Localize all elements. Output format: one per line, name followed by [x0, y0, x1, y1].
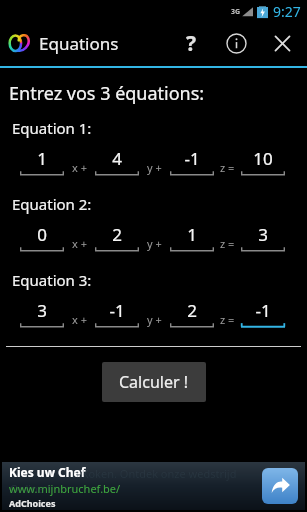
button[interactable]: Open ad: [262, 468, 298, 504]
staticText: 3G: [231, 7, 241, 17]
button[interactable]: 1: [170, 223, 214, 254]
staticText: 3: [258, 223, 268, 246]
staticText: Equation 2:: [12, 194, 92, 214]
staticText: AdChoices: [9, 497, 56, 509]
staticText: 1: [187, 223, 197, 246]
staticText: x +: [72, 236, 87, 251]
button[interactable]: 0: [20, 223, 64, 254]
button[interactable]: 2: [170, 299, 214, 330]
staticText: 4: [112, 147, 122, 170]
staticText: y +: [147, 160, 162, 175]
staticText: 2: [112, 223, 122, 246]
staticText: x +: [72, 312, 87, 327]
button[interactable]: 1: [20, 147, 64, 178]
staticText: www.mijnbruchef.be/: [9, 481, 121, 496]
staticText: 3: [37, 299, 47, 322]
button[interactable]: -1: [95, 299, 139, 330]
button[interactable]: Help: [169, 22, 213, 64]
staticText: x +: [72, 160, 87, 175]
staticText: Online !: [10, 481, 50, 496]
button[interactable]: 2: [95, 223, 139, 254]
staticText: 10: [253, 147, 273, 170]
staticText: -1: [184, 147, 200, 170]
staticText: z =: [220, 236, 235, 251]
button[interactable]: Advertisement: [2, 462, 305, 510]
button[interactable]: 3: [20, 299, 64, 330]
button[interactable]: Calculer !: [102, 362, 206, 402]
staticText: -1: [255, 299, 271, 322]
staticText: z =: [220, 312, 235, 327]
button[interactable]: Info: [213, 22, 259, 64]
button[interactable]: 4: [95, 147, 139, 178]
staticText: 2: [187, 299, 197, 322]
staticText: y +: [147, 236, 162, 251]
staticText: 0: [37, 223, 47, 246]
staticText: ?: [186, 29, 197, 58]
staticText: Calculer !: [119, 371, 189, 393]
staticText: Kies uw Chef: [9, 464, 86, 480]
staticText: Equation 1:: [12, 118, 92, 138]
button[interactable]: 10: [241, 147, 285, 178]
staticText: Equations: [39, 32, 119, 55]
button[interactable]: 3: [241, 223, 285, 254]
staticText: 1: [37, 147, 47, 170]
button[interactable]: -1: [170, 147, 214, 178]
button[interactable]: -1: [241, 299, 285, 330]
button[interactable]: Close: [259, 22, 305, 64]
staticText: 9:27: [273, 2, 301, 21]
staticText: Entrez vos 3 équations:: [9, 81, 205, 106]
staticText: n Koken. Ontdek onze wedstrijd: [72, 466, 237, 481]
staticText: -1: [109, 299, 125, 322]
staticText: y +: [147, 312, 162, 327]
staticText: z =: [220, 160, 235, 175]
staticText: Equation 3:: [12, 270, 92, 290]
